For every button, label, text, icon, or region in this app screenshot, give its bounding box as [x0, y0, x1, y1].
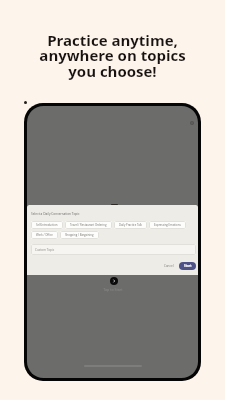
button[interactable]: Start	[179, 262, 196, 270]
staticText: Daily Practice Talk	[119, 223, 142, 227]
button[interactable]: Self-Introduction	[31, 221, 63, 229]
button[interactable]: Continue	[110, 277, 118, 285]
staticText: Tap to Start	[103, 287, 123, 292]
button[interactable]: Work / Office	[31, 231, 58, 239]
staticText: Practice anytime, anywhere on topics you…	[39, 30, 186, 82]
staticText: Expressing Emotions	[154, 223, 181, 227]
button[interactable]: Cancel	[161, 262, 177, 270]
button[interactable]: Custom Topic	[31, 244, 196, 255]
staticText: Travel / Restaurant Ordering	[70, 223, 107, 227]
staticText: Cancel	[164, 264, 174, 268]
staticText: Custom Topic	[35, 248, 55, 252]
staticText: Shopping / Bargaining	[65, 233, 94, 237]
staticText: Work / Office	[36, 233, 53, 237]
button[interactable]: Daily Practice Talk	[114, 221, 147, 229]
staticText: Select a Daily Conversation Topic	[31, 212, 80, 216]
button[interactable]: Expressing Emotions	[149, 221, 186, 229]
staticText: Start	[184, 264, 192, 268]
button[interactable]: Travel / Restaurant Ordering	[65, 221, 112, 229]
button[interactable]: Shopping / Bargaining	[60, 231, 99, 239]
staticText: Self-Introduction	[36, 223, 58, 227]
